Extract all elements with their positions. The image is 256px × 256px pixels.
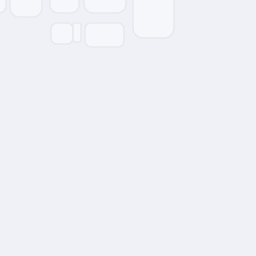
button[interactable]: Card 5	[133, 0, 174, 38]
button[interactable]: Card 4	[84, 0, 126, 13]
button[interactable]: Card 1	[0, 0, 6, 13]
button[interactable]: Card 6	[51, 23, 73, 44]
button[interactable]: Card 3	[50, 0, 79, 13]
button[interactable]: Card 8	[85, 23, 124, 47]
button[interactable]: Card 7	[73, 23, 81, 42]
button[interactable]: Card 2	[10, 0, 42, 17]
